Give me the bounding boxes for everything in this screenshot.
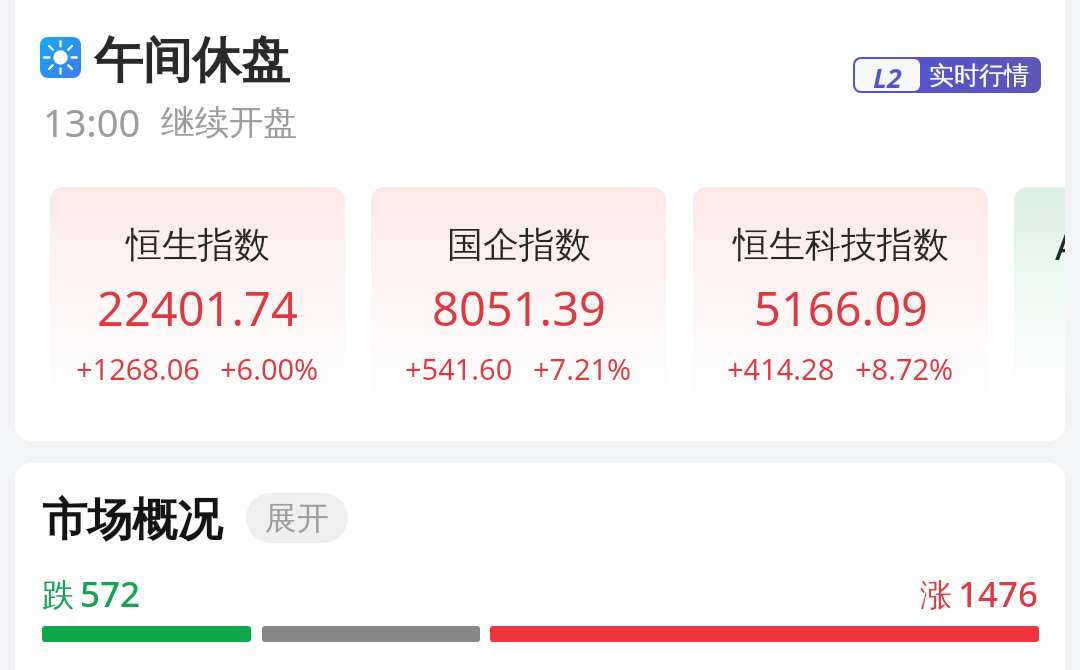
button[interactable]: 恒生指数 [50, 187, 345, 408]
staticText: 展开 [265, 498, 329, 538]
staticText: 22401.74 [97, 276, 298, 340]
staticText: 恒生指数 [126, 222, 270, 267]
staticText: 5166.09 [754, 276, 928, 340]
staticText: 恒生科技指数 [733, 222, 949, 267]
button[interactable]: 恒生科技指数 [693, 187, 988, 408]
staticText: 13:00 [43, 96, 141, 148]
staticText: 市场概况 [42, 492, 222, 549]
staticText: 涨 [920, 575, 952, 615]
staticText: 午间休盘 [94, 30, 290, 92]
staticText: 1476 [958, 570, 1039, 618]
button[interactable]: A 股三大指数 [1014, 187, 1065, 408]
button[interactable]: 展开 [246, 493, 348, 543]
button[interactable]: 国企指数 [371, 187, 666, 408]
other: Market session status [40, 37, 81, 78]
staticText: A 股三大指数 [1055, 222, 1065, 271]
staticText: L2 [873, 59, 902, 91]
button[interactable]: L2 [853, 57, 1041, 93]
staticText: +1268.06 [76, 349, 200, 388]
staticText: +6.00% [220, 349, 319, 388]
staticText: +8.72% [855, 349, 954, 388]
staticText: 572 [80, 570, 141, 618]
button[interactable]: Advance decline ratio [42, 626, 1039, 642]
staticText: +414.28 [727, 349, 835, 388]
staticText: +7.21% [533, 349, 632, 388]
staticText: 跌 [42, 575, 74, 615]
staticText: 国企指数 [447, 222, 591, 267]
button[interactable]: Market session status [40, 34, 290, 96]
staticText: 8051.39 [432, 276, 606, 340]
staticText: 继续开盘 [161, 101, 297, 144]
staticText: 实时行情 [929, 60, 1029, 91]
staticText: +541.60 [405, 349, 513, 388]
